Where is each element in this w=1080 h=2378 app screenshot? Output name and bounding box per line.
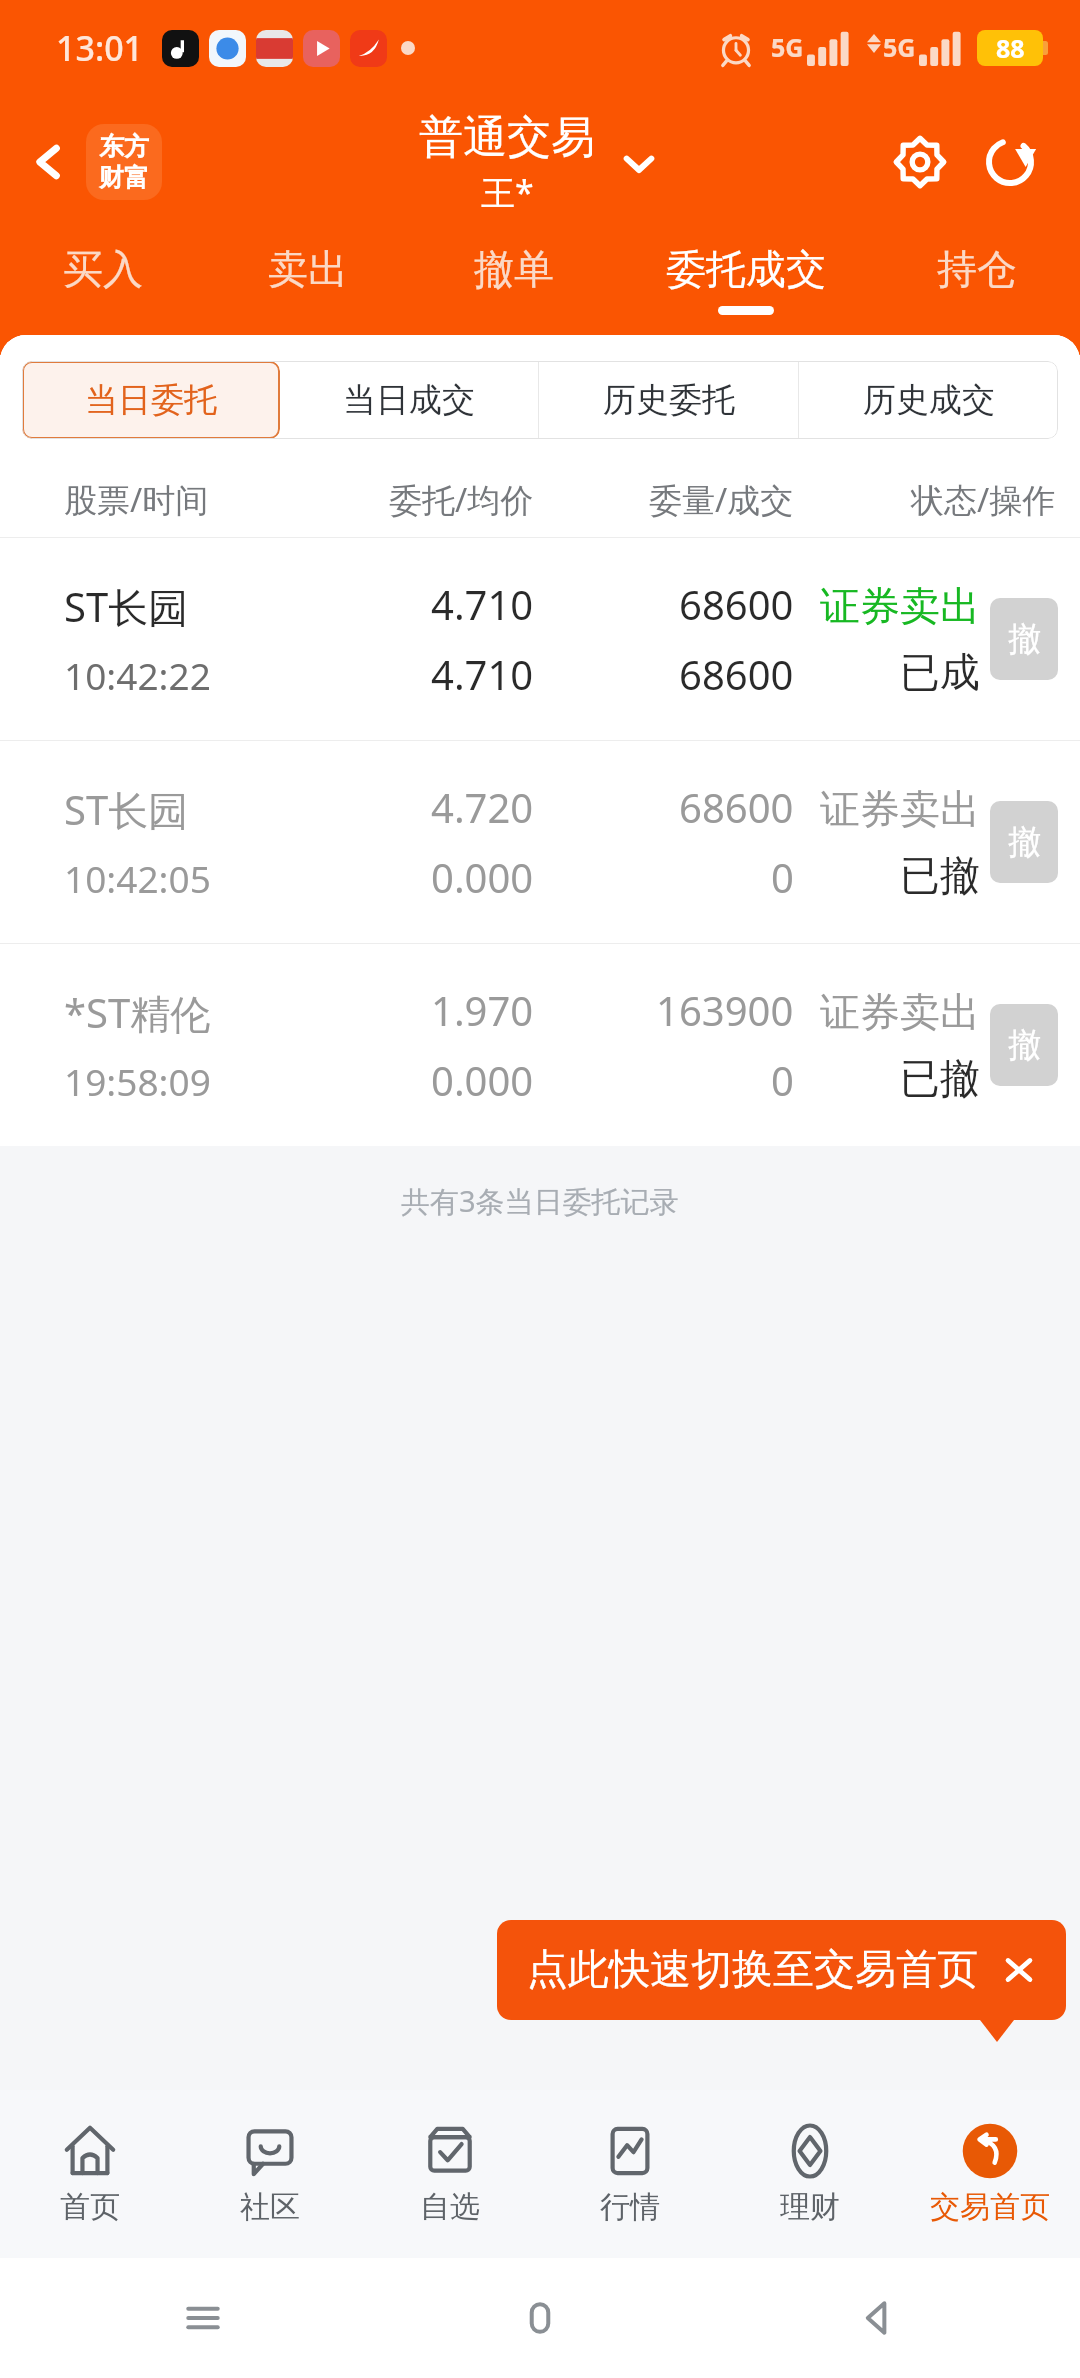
button[interactable]: Refresh: [974, 126, 1046, 198]
staticText: 88: [996, 31, 1025, 65]
staticText: 证券卖出: [820, 784, 980, 834]
staticText: 社区: [240, 2188, 300, 2226]
staticText: 5G: [883, 30, 916, 64]
staticText: 当日成交: [343, 379, 475, 421]
staticText: 普通交易: [419, 110, 595, 165]
button[interactable]: 撤: [990, 598, 1058, 680]
staticText: 撤: [1008, 1024, 1041, 1066]
button[interactable]: 交易首页: [900, 2090, 1080, 2258]
staticText: 当日委托: [85, 379, 217, 421]
staticText: 东方: [99, 131, 149, 162]
staticText: 68600: [679, 577, 794, 631]
staticText: 历史成交: [863, 379, 995, 421]
button[interactable]: 持仓: [874, 228, 1080, 332]
staticText: 19:58:09: [64, 1056, 211, 1106]
staticText: *ST精伦: [64, 985, 211, 1040]
staticText: 4.710: [431, 577, 534, 631]
staticText: 点此快速切换至交易首页: [527, 1944, 978, 1996]
button[interactable]: 买入: [0, 228, 205, 332]
button[interactable]: Back: [18, 116, 170, 208]
button[interactable]: 社区: [180, 2090, 360, 2258]
staticText: 共有3条当日委托记录: [401, 1181, 679, 1221]
staticText: 撤单: [474, 244, 554, 294]
button[interactable]: 撤单: [411, 228, 617, 332]
button[interactable]: 当日成交: [280, 361, 538, 439]
other: Close: [1002, 1953, 1036, 1987]
staticText: 交易首页: [930, 2188, 1050, 2226]
staticText: ST长园: [64, 579, 189, 634]
staticText: 卖出: [268, 244, 348, 294]
staticText: 已成: [900, 647, 980, 697]
staticText: 4.720: [431, 780, 534, 834]
button[interactable]: 卖出: [205, 228, 411, 332]
staticText: 68600: [679, 647, 794, 701]
staticText: 委托/均价: [389, 477, 534, 522]
staticText: 买入: [63, 244, 143, 294]
staticText: 历史委托: [603, 379, 735, 421]
button[interactable]: 历史成交: [799, 361, 1058, 439]
button[interactable]: 委托成交: [617, 228, 874, 332]
staticText: 0.000: [431, 1053, 534, 1107]
staticText: 5G: [771, 30, 804, 64]
staticText: 状态/操作: [911, 477, 1056, 522]
button[interactable]: 当日委托: [22, 361, 280, 439]
button[interactable]: 首页: [0, 2090, 180, 2258]
staticText: 首页: [60, 2188, 120, 2226]
button[interactable]: Settings: [884, 126, 956, 198]
button[interactable]: Recents: [180, 2295, 226, 2341]
staticText: 10:42:05: [64, 853, 211, 903]
button[interactable]: 自选: [360, 2090, 540, 2258]
staticText: 0: [771, 850, 794, 904]
staticText: 已撤: [900, 850, 980, 900]
button[interactable]: 撤: [990, 801, 1058, 883]
button[interactable]: 撤: [990, 1004, 1058, 1086]
button[interactable]: 点此快速切换至交易首页: [497, 1920, 1066, 2020]
staticText: 财富: [99, 162, 149, 193]
staticText: 1.970: [431, 983, 534, 1037]
button[interactable]: ST长园: [0, 741, 1080, 943]
button[interactable]: Home: [517, 2295, 563, 2341]
button[interactable]: 普通交易: [419, 110, 661, 215]
button[interactable]: ST长园: [0, 538, 1080, 740]
staticText: 证券卖出: [820, 581, 980, 631]
staticText: 4.710: [431, 647, 534, 701]
staticText: 撤: [1008, 821, 1041, 863]
button[interactable]: *ST精伦: [0, 944, 1080, 1146]
staticText: 163900: [656, 983, 794, 1037]
staticText: 0: [771, 1053, 794, 1107]
staticText: 13:01: [56, 25, 144, 71]
staticText: 行情: [600, 2188, 660, 2226]
button[interactable]: 历史委托: [539, 361, 798, 439]
staticText: 68600: [679, 780, 794, 834]
staticText: 王*: [481, 169, 534, 215]
staticText: 股票/时间: [64, 477, 209, 522]
staticText: 持仓: [937, 244, 1017, 294]
staticText: 10:42:22: [64, 650, 211, 700]
button[interactable]: Back: [854, 2295, 900, 2341]
staticText: 委量/成交: [649, 477, 794, 522]
staticText: 已撤: [900, 1053, 980, 1103]
staticText: 0.000: [431, 850, 534, 904]
staticText: 自选: [420, 2188, 480, 2226]
staticText: ST长园: [64, 782, 189, 837]
staticText: 证券卖出: [820, 987, 980, 1037]
staticText: 委托成交: [666, 244, 826, 294]
button[interactable]: 行情: [540, 2090, 720, 2258]
staticText: 理财: [780, 2188, 840, 2226]
button[interactable]: 理财: [720, 2090, 900, 2258]
staticText: 撤: [1008, 618, 1041, 660]
